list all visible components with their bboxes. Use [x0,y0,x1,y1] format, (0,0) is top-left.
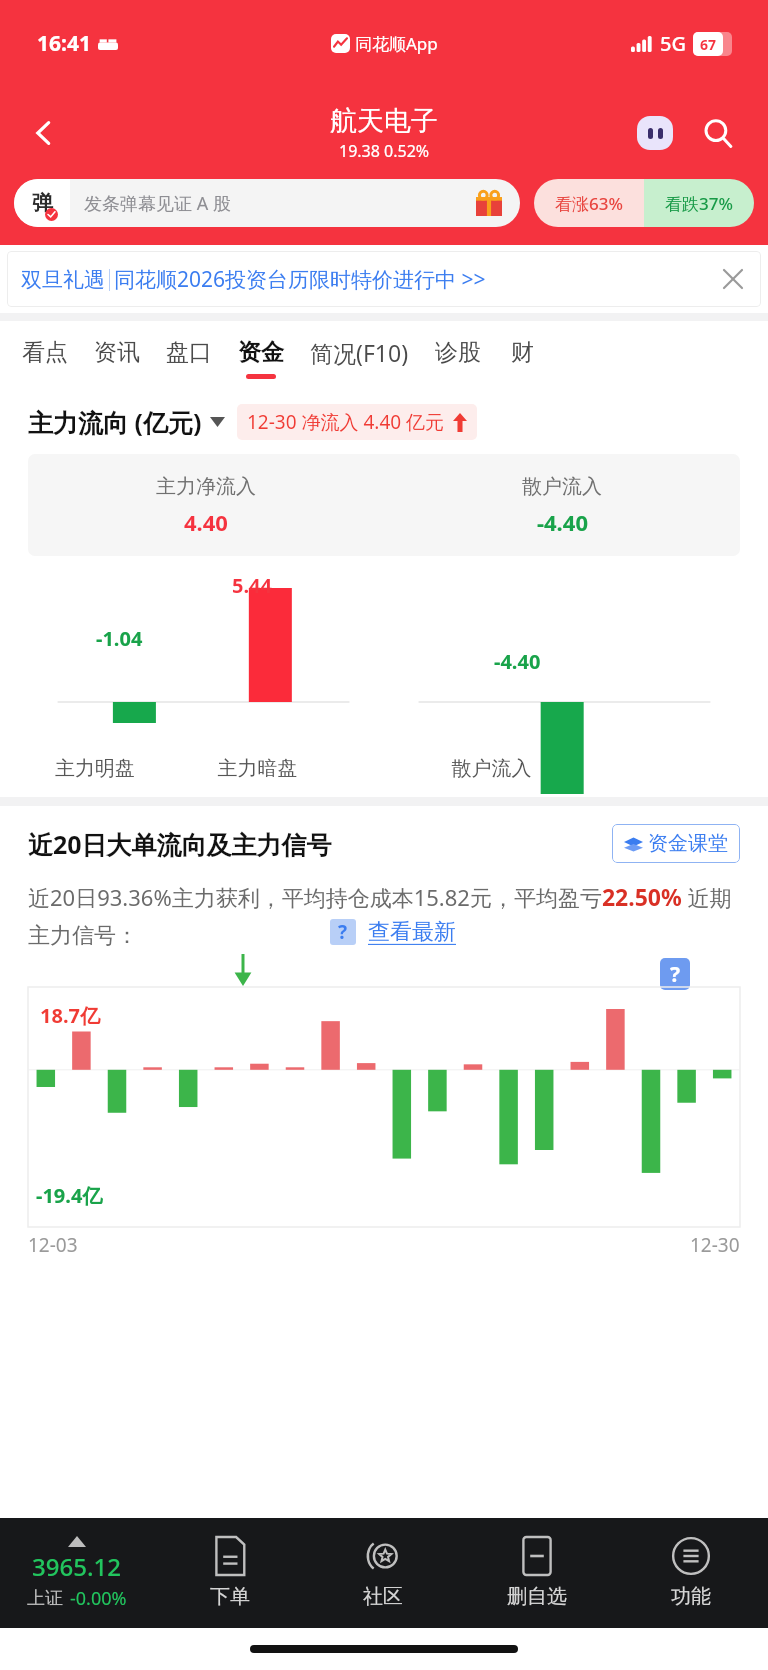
staticText: 18.7亿 [40,1002,100,1029]
staticText: 上证 [27,1587,63,1610]
staticText: 主力明盘 [0,756,190,781]
button[interactable]: 看跌37% [644,179,754,227]
button[interactable]: 诊股 [435,321,481,396]
button[interactable]: Help [330,919,356,945]
staticText: 散户流入 [325,756,658,781]
staticText: 诊股 [435,338,481,367]
staticText: 双旦礼遇 [21,267,105,293]
staticText: 12-30 [690,1232,740,1258]
staticText: 看涨63% [555,192,623,215]
button[interactable]: Search [694,109,742,157]
button[interactable]: Back [22,111,66,155]
staticText: 财 [511,338,534,367]
staticText: 资金课堂 [648,831,728,856]
staticText: 主力净流入 [156,474,256,499]
staticText: 19.38 0.52% [339,140,430,162]
staticText: 资金 [238,338,284,367]
staticText: -1.04 [96,625,143,652]
button[interactable]: 查看最新 [368,918,456,946]
staticText: 散户流入 [522,474,602,499]
button[interactable]: 看涨63% [534,179,644,227]
button[interactable]: AI assistant [632,110,678,156]
button[interactable]: 主力流向 (亿元) [28,404,768,440]
staticText: 航天电子 [330,104,438,138]
staticText: 12-03 [28,1232,78,1258]
button[interactable]: 散户流入 [384,454,740,556]
button[interactable]: 简况(F10) [310,321,409,396]
staticText: ? [338,919,348,945]
staticText: 主力暗盘 [190,756,325,781]
staticText: 发条弹幕见证 A 股 [84,191,231,216]
button[interactable]: 弹 [14,179,520,227]
staticText: 67 [700,35,717,54]
staticText: 5.44 [232,572,272,599]
staticText: 主力流向 (亿元) [28,405,202,439]
staticText: 看点 [22,338,68,367]
button[interactable]: 财 [507,321,537,396]
staticText: 看跌37% [665,192,733,215]
staticText: 简况(F10) [310,337,409,368]
button[interactable]: 社区 [306,1518,460,1628]
staticText: 近20日93.36%主力获利，平均持仓成本15.82元，平均盈亏22.50% 近… [28,881,740,950]
staticText: 资讯 [94,338,140,367]
staticText: 12-30 净流入 4.40 亿元 [247,409,445,435]
staticText: -4.40 [537,507,588,537]
button[interactable]: 下单 [153,1518,306,1628]
button[interactable]: 资金课堂 [624,831,728,856]
staticText: 删自选 [507,1584,567,1609]
staticText: 同花顺2026投资台历限时特价进行中 >> [114,265,486,294]
staticText: ? [670,960,681,989]
staticText: -0.00% [70,1586,127,1611]
staticText: 近20日大单流向及主力信号 [28,827,332,861]
button[interactable]: 双旦礼遇 [21,265,713,294]
staticText: 弹 [32,190,53,216]
button[interactable]: 盘口 [166,321,212,396]
button[interactable]: 资讯 [94,321,140,396]
staticText: 盘口 [166,338,212,367]
staticText: -4.40 [494,648,541,675]
button[interactable]: 看点 [22,321,68,396]
staticText: -19.4亿 [36,1182,103,1209]
staticText: 5G [660,30,686,57]
button[interactable]: Close banner [713,259,753,299]
button[interactable]: 主力净流入 [28,454,384,556]
staticText: 功能 [671,1584,711,1609]
staticText: 3965.12 [32,1550,121,1583]
button[interactable]: Chart help [660,958,690,990]
staticText: 社区 [363,1584,403,1609]
staticText: 4.40 [184,507,228,537]
button[interactable]: 资金 [238,321,284,396]
button[interactable]: 删自选 [460,1518,614,1628]
staticText: 16:41 [37,29,91,58]
staticText: 同花顺App [355,32,438,55]
button[interactable]: 3965.12 [0,1518,153,1628]
staticText: 下单 [210,1584,250,1609]
button[interactable]: 功能 [614,1518,768,1628]
